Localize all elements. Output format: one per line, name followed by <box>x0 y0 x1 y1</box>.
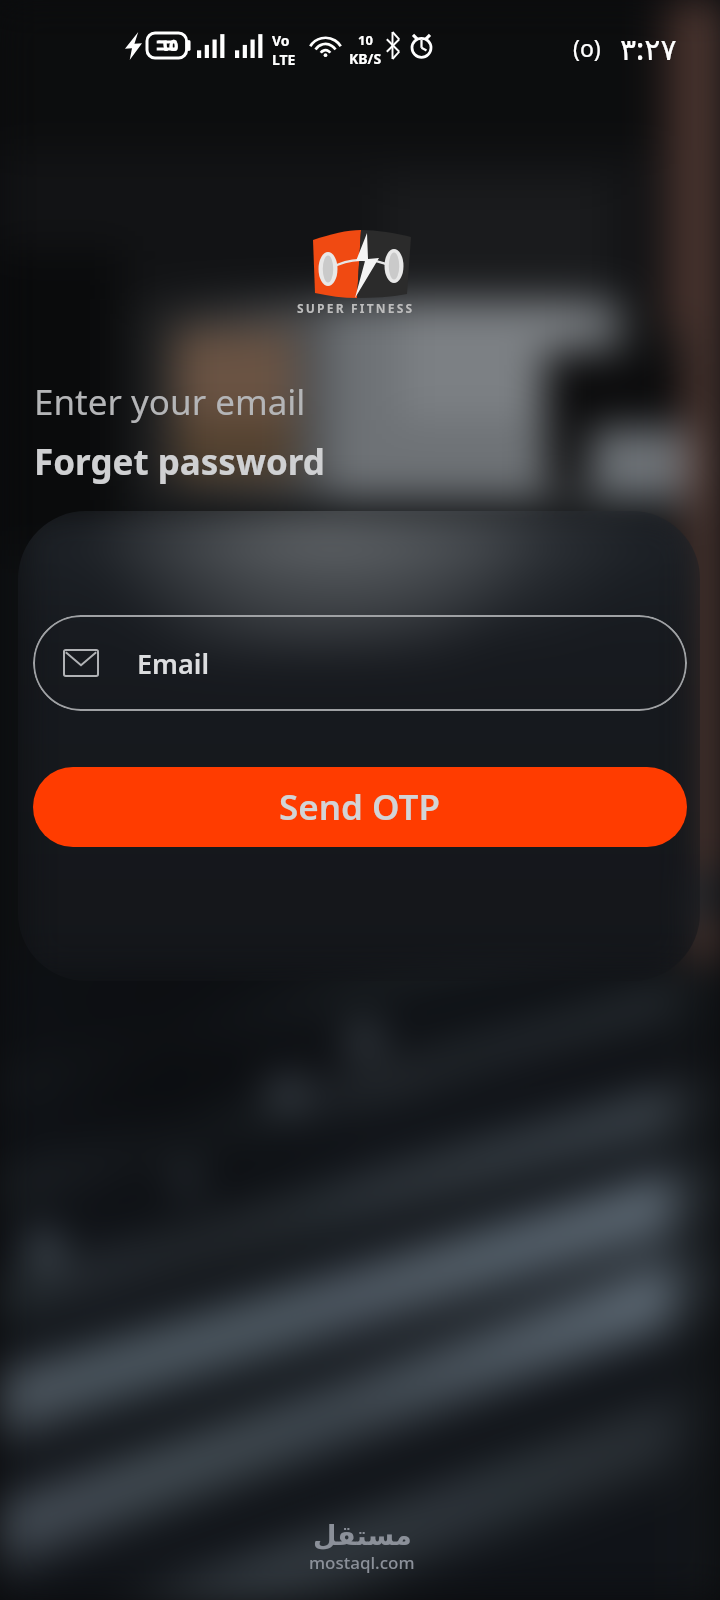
staticText: Enter your email <box>34 378 306 426</box>
staticText: KB/S <box>349 49 382 68</box>
staticText: 10 <box>358 31 373 49</box>
staticText: ٣:٢٧ <box>620 28 677 69</box>
staticText: Email <box>137 645 210 682</box>
staticText: Vo <box>272 31 290 50</box>
staticText: LTE <box>272 50 296 69</box>
staticText: (o) <box>573 32 601 63</box>
staticText: mostaql.com <box>309 1551 415 1574</box>
button[interactable]: Send OTP <box>33 767 687 847</box>
staticText: Send OTP <box>279 783 441 831</box>
staticText: ٦٥ <box>158 35 179 55</box>
staticText: مستقل <box>313 1520 412 1551</box>
staticText: Forget password <box>34 438 325 486</box>
button[interactable]: Email <box>33 615 687 711</box>
staticText: SUPER FITNESS <box>297 300 415 316</box>
